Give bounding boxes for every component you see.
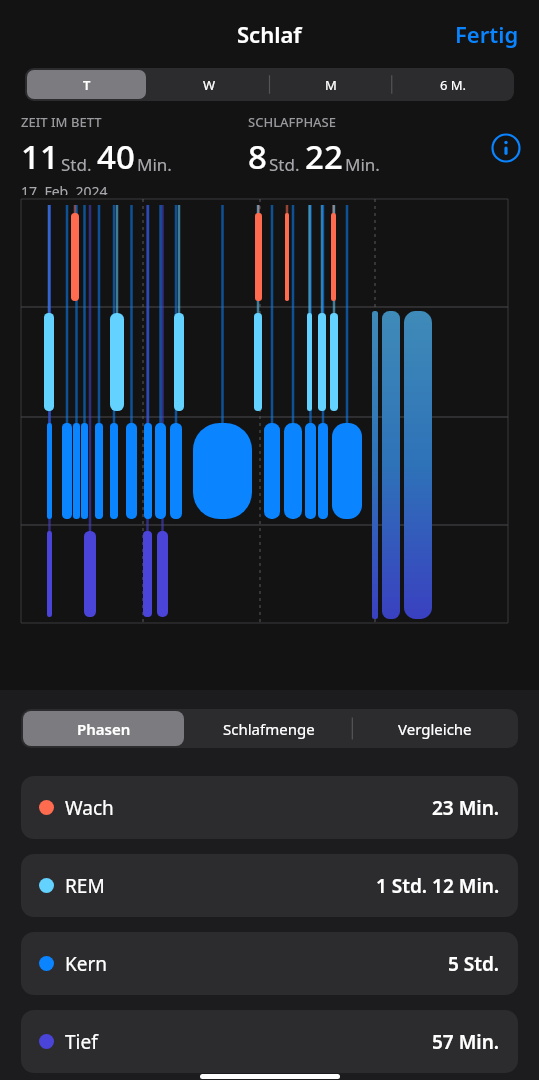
button[interactable]: Vergleiche xyxy=(354,711,516,746)
staticText: Kern xyxy=(65,951,108,977)
staticText: 8 xyxy=(248,134,267,179)
staticText: 22 xyxy=(305,134,343,179)
staticText: SCHLAFPHASE xyxy=(248,113,337,131)
staticText: 23 Min. xyxy=(432,795,500,821)
staticText: Tief xyxy=(65,1029,98,1055)
staticText: W xyxy=(203,76,216,94)
staticText: 5 Std. xyxy=(448,951,500,977)
staticText: Phasen xyxy=(77,719,131,739)
staticText: 57 Min. xyxy=(432,1029,500,1055)
button[interactable]: Phasen xyxy=(23,711,184,746)
button[interactable]: 6 M. xyxy=(394,70,512,99)
staticText: 11 xyxy=(21,134,59,179)
staticText: Fertig xyxy=(455,19,519,49)
staticText: ZEIT IM BETT xyxy=(21,113,102,131)
staticText: Schlafmenge xyxy=(223,719,315,739)
staticText: Vergleiche xyxy=(398,719,472,739)
button[interactable]: Wach xyxy=(21,776,518,839)
button[interactable]: REM xyxy=(21,854,518,917)
staticText: 40 xyxy=(97,134,135,179)
button[interactable]: M xyxy=(272,70,390,99)
button[interactable]: W xyxy=(150,70,268,99)
staticText: Wach xyxy=(65,795,114,821)
staticText: REM xyxy=(65,873,105,899)
button[interactable]: Fertig xyxy=(451,13,523,55)
staticText: Schlaf xyxy=(237,19,302,49)
button[interactable]: Schlafmenge xyxy=(188,711,350,746)
staticText: Std. xyxy=(61,153,92,176)
button[interactable]: Info xyxy=(491,133,521,163)
staticText: 17. Feb. 2024 xyxy=(21,182,108,195)
staticText: T xyxy=(83,76,91,94)
staticText: Min. xyxy=(345,153,380,176)
staticText: 6 M. xyxy=(440,76,467,94)
staticText: Min. xyxy=(137,153,172,176)
staticText: 1 Std. 12 Min. xyxy=(376,873,500,899)
staticText: M xyxy=(325,76,337,94)
button[interactable]: Kern xyxy=(21,932,518,995)
button[interactable]: T xyxy=(27,70,146,99)
staticText: Std. xyxy=(269,153,300,176)
button[interactable]: Tief xyxy=(21,1010,518,1073)
